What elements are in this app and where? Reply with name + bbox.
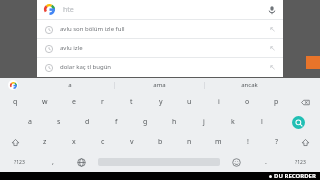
button[interactable]: q xyxy=(0,92,30,112)
button[interactable]: ?123 xyxy=(0,152,39,172)
button[interactable]: l xyxy=(247,112,276,132)
staticText: avlu son bölüm izle full xyxy=(60,25,125,33)
staticText: k xyxy=(231,117,235,127)
staticText: q xyxy=(13,97,18,107)
staticText: hte xyxy=(63,5,74,15)
button[interactable]: r xyxy=(88,92,117,112)
staticText: ?123 xyxy=(14,159,25,166)
staticText: w xyxy=(42,97,48,107)
button[interactable]: h xyxy=(160,112,189,132)
staticText: n xyxy=(187,137,192,147)
button[interactable]: o xyxy=(233,92,262,112)
staticText: e xyxy=(72,97,76,107)
button[interactable]: k xyxy=(218,112,247,132)
button[interactable]: z xyxy=(30,132,59,152)
staticText: h xyxy=(172,117,177,127)
staticText: b xyxy=(158,137,163,147)
button[interactable]: d xyxy=(73,112,102,132)
button[interactable]: y xyxy=(146,92,175,112)
staticText: j xyxy=(203,117,205,127)
button[interactable]: j xyxy=(189,112,218,132)
staticText: dolar kaç tl bugün xyxy=(60,63,112,71)
button[interactable]: b xyxy=(146,132,175,152)
staticText: DU RECORDER xyxy=(274,172,316,180)
staticText: avlu izle xyxy=(60,44,83,52)
staticText: p xyxy=(274,97,279,107)
staticText: ama xyxy=(153,81,166,89)
staticText: c xyxy=(101,137,105,147)
button[interactable]: Google xyxy=(0,78,26,92)
button[interactable]: n xyxy=(175,132,204,152)
button[interactable]: dolar kaç tl bugün xyxy=(37,58,283,76)
staticText: y xyxy=(159,97,163,107)
button[interactable]: Voice search xyxy=(266,4,277,15)
button[interactable]: Backspace xyxy=(291,92,320,112)
staticText: v xyxy=(130,137,134,147)
button[interactable]: w xyxy=(30,92,59,112)
button[interactable]: m xyxy=(204,132,233,152)
button[interactable]: i xyxy=(204,92,233,112)
button[interactable]: Shift xyxy=(0,132,30,152)
button[interactable]: t xyxy=(117,92,146,112)
button[interactable]: x xyxy=(59,132,88,152)
button[interactable]: s xyxy=(44,112,73,132)
staticText: a xyxy=(68,81,72,89)
button[interactable]: ancak xyxy=(205,78,294,92)
button[interactable]: u xyxy=(175,92,204,112)
staticText: o xyxy=(245,97,250,107)
staticText: d xyxy=(85,117,90,127)
button[interactable]: hte xyxy=(37,0,283,19)
button[interactable]: ?123 xyxy=(280,152,320,172)
button[interactable]: Shift xyxy=(291,132,320,152)
staticText: x xyxy=(72,137,76,147)
button[interactable]: Change keyboard xyxy=(67,152,96,172)
staticText: a xyxy=(28,117,32,127)
button[interactable]: , xyxy=(39,152,67,172)
button[interactable]: f xyxy=(102,112,131,132)
staticText: , xyxy=(52,157,54,167)
button[interactable]: ama xyxy=(115,78,204,92)
button[interactable]: c xyxy=(88,132,117,152)
button[interactable]: g xyxy=(131,112,160,132)
button[interactable]: avlu son bölüm izle full xyxy=(37,20,283,38)
staticText: ! xyxy=(247,137,249,147)
staticText: z xyxy=(43,137,47,147)
button[interactable]: avlu izle xyxy=(37,39,283,57)
staticText: ?123 xyxy=(295,159,306,166)
staticText: t xyxy=(130,97,133,107)
button[interactable]: ? xyxy=(262,132,291,152)
button[interactable]: Emoji xyxy=(222,152,251,172)
button[interactable]: p xyxy=(262,92,291,112)
staticText: l xyxy=(261,117,263,127)
staticText: u xyxy=(187,97,192,107)
button[interactable]: a xyxy=(15,112,44,132)
button[interactable]: ! xyxy=(233,132,262,152)
staticText: i xyxy=(218,97,220,107)
staticText: g xyxy=(143,117,148,127)
button[interactable]: Search xyxy=(276,112,320,132)
button[interactable]: v xyxy=(117,132,146,152)
staticText: m xyxy=(215,137,222,147)
staticText: r xyxy=(101,97,104,107)
staticText: ancak xyxy=(241,81,258,89)
staticText: f xyxy=(115,117,118,127)
staticText: ? xyxy=(275,137,279,147)
staticText: s xyxy=(57,117,61,127)
button[interactable]: e xyxy=(59,92,88,112)
button[interactable]: a xyxy=(26,78,114,92)
staticText: . xyxy=(265,157,267,167)
